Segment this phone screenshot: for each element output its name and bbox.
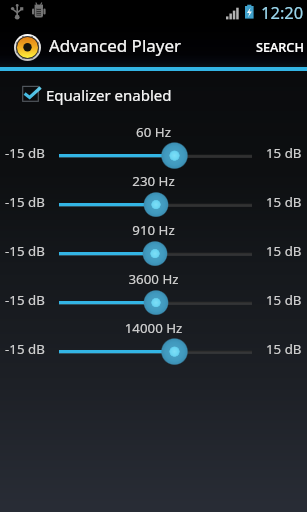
button[interactable]: 60 Hz level <box>45 121 267 170</box>
staticText: -15 dB <box>5 242 45 260</box>
staticText: SEARCH <box>256 38 304 55</box>
staticText: -15 dB <box>5 291 45 309</box>
staticText: 230 Hz <box>43 172 264 190</box>
staticText: 12:20 <box>261 1 304 23</box>
button[interactable]: 910 Hz level <box>45 219 267 268</box>
button[interactable]: SEARCH <box>247 24 307 67</box>
staticText: 60 Hz <box>43 123 264 141</box>
staticText: -15 dB <box>5 193 45 211</box>
staticText: 15 dB <box>266 242 302 260</box>
button[interactable]: 230 Hz level <box>45 170 267 219</box>
staticText: 15 dB <box>266 144 302 162</box>
staticText: Equalizer enabled <box>46 85 172 105</box>
other: Advanced Player <box>14 34 41 61</box>
button[interactable]: 3600 Hz level <box>45 268 267 317</box>
staticText: Advanced Player <box>49 34 182 57</box>
staticText: -15 dB <box>5 144 45 162</box>
button[interactable]: Equalizer enabled <box>0 71 307 117</box>
staticText: 14000 Hz <box>43 319 264 337</box>
button[interactable]: 14000 Hz level <box>45 317 267 366</box>
staticText: 910 Hz <box>43 221 264 239</box>
staticText: 15 dB <box>266 291 302 309</box>
staticText: 15 dB <box>266 340 302 358</box>
staticText: -15 dB <box>5 340 45 358</box>
staticText: 15 dB <box>266 193 302 211</box>
staticText: 3600 Hz <box>43 270 264 288</box>
